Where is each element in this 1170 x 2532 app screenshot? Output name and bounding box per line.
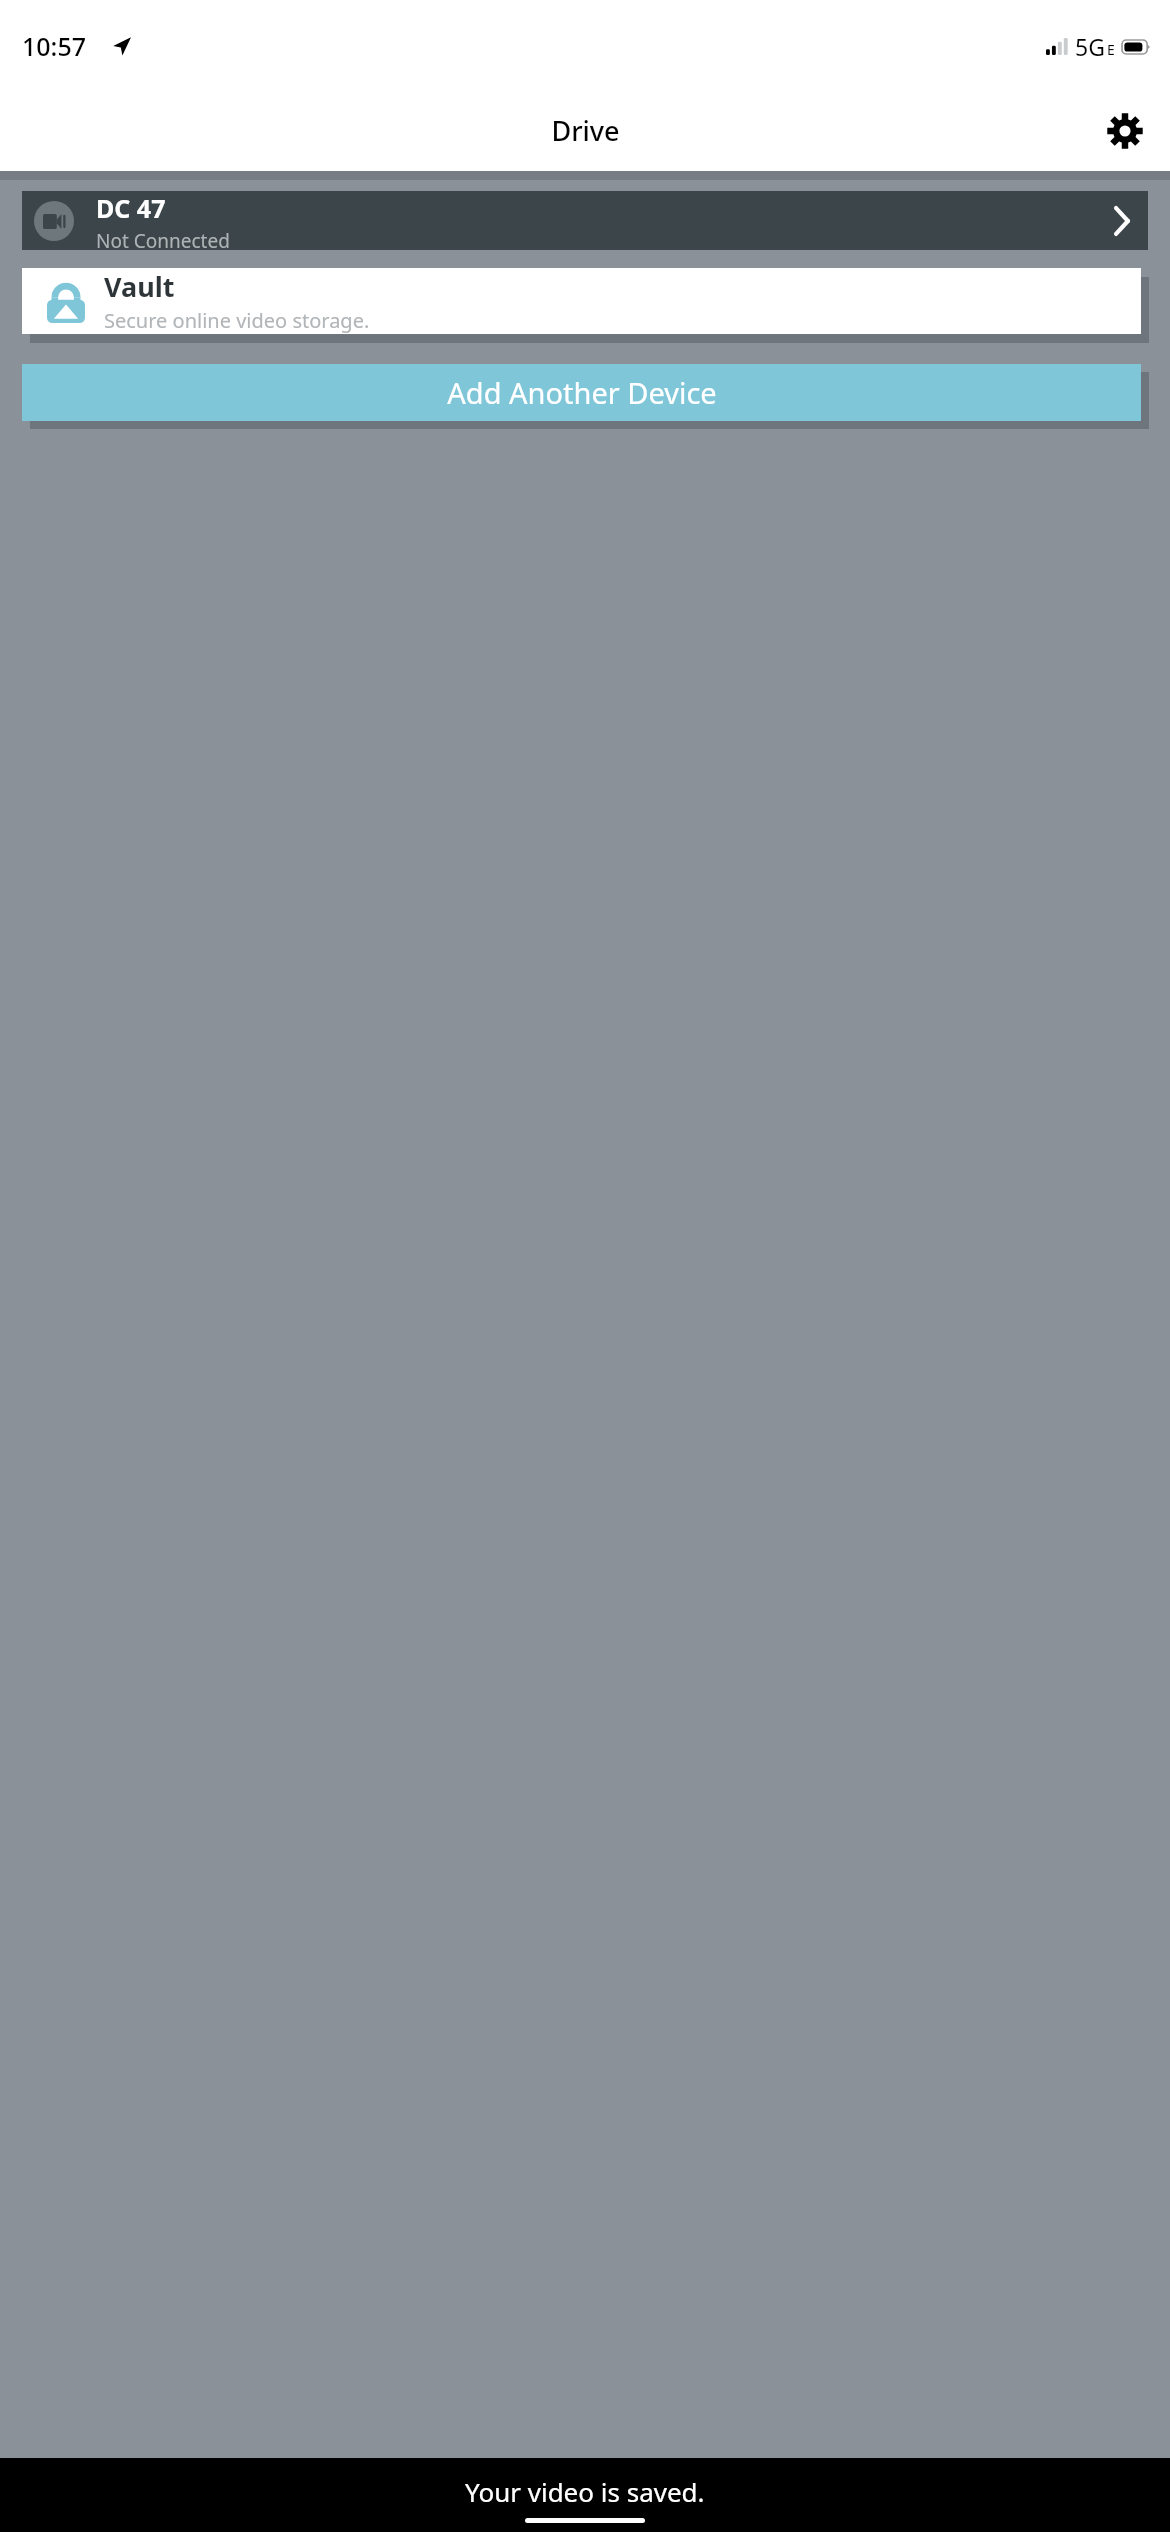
staticText: DC 47	[96, 191, 166, 225]
button[interactable]: DC 47	[22, 191, 1148, 250]
staticText: Vault	[104, 268, 175, 305]
staticText: 5G	[1075, 31, 1105, 62]
button[interactable]: Settings	[1097, 103, 1153, 159]
button[interactable]: Vault	[22, 268, 1141, 334]
staticText: 10:57	[22, 29, 87, 63]
staticText: Not Connected	[96, 228, 230, 250]
staticText: Drive	[551, 112, 620, 149]
staticText: E	[1107, 40, 1115, 59]
button[interactable]: Add Another Device	[22, 364, 1141, 421]
staticText: Your video is saved.	[465, 2474, 705, 2509]
staticText: Add Another Device	[447, 373, 717, 412]
staticText: Secure online video storage.	[104, 307, 370, 334]
